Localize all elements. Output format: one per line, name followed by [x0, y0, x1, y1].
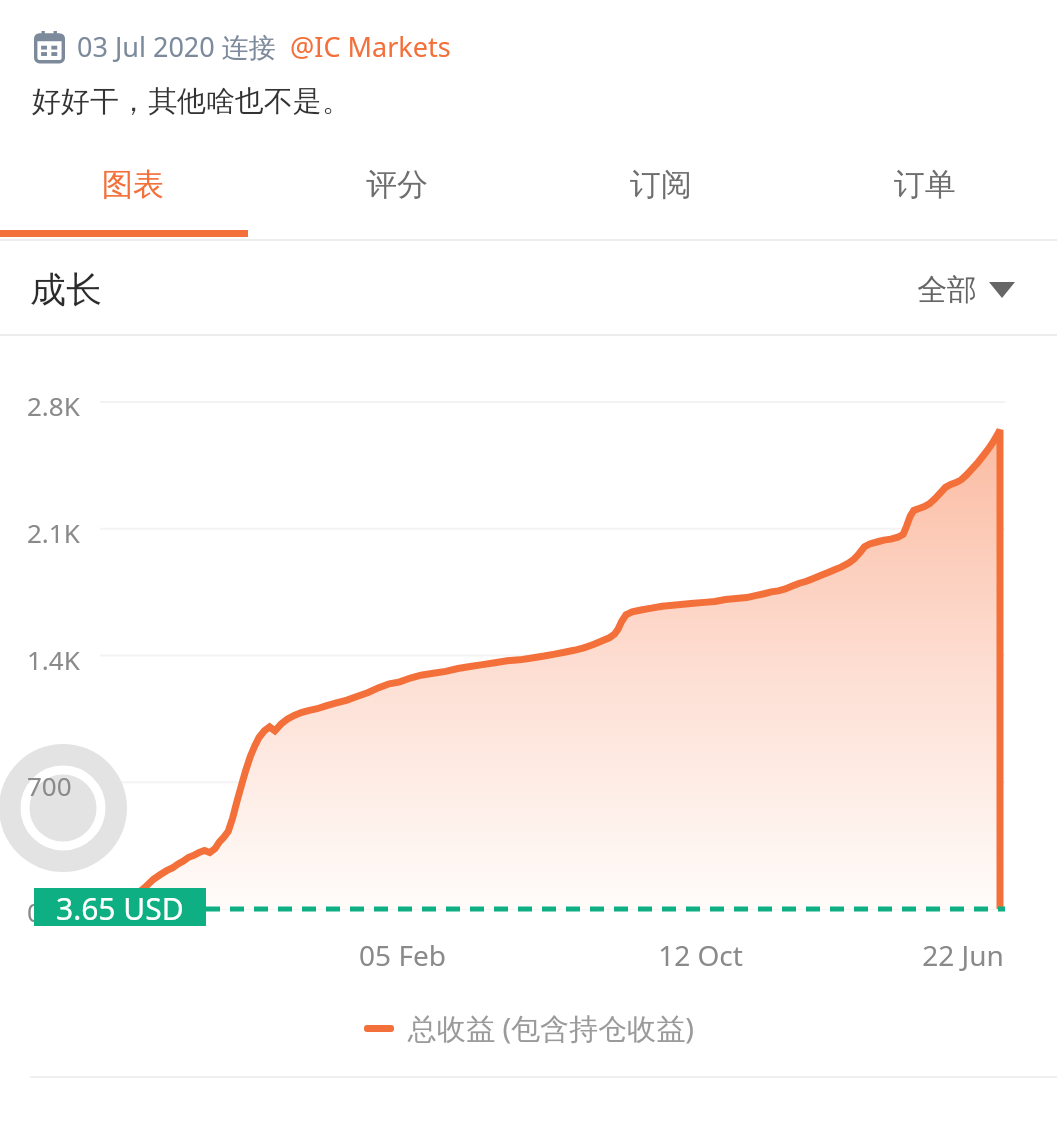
- staticText: 22 Jun: [922, 936, 1004, 974]
- staticText: 05 Feb: [359, 936, 446, 974]
- staticText: 成长: [30, 267, 102, 312]
- staticText: 总收益 (包含持仓收益): [408, 1008, 694, 1048]
- staticText: 03 Jul 2020 连接: [77, 28, 276, 65]
- staticText: 0: [27, 894, 42, 929]
- staticText: 700: [27, 768, 72, 803]
- button[interactable]: 图表: [0, 156, 265, 212]
- staticText: 3.65 USD: [56, 888, 184, 926]
- staticText: 评分: [366, 165, 428, 204]
- staticText: 订阅: [630, 165, 692, 204]
- staticText: @IC Markets: [290, 28, 451, 65]
- button[interactable]: 订单: [793, 156, 1057, 212]
- staticText: 12 Oct: [658, 936, 743, 974]
- staticText: 订单: [894, 165, 956, 204]
- staticText: 1.4K: [27, 642, 80, 677]
- other: Calendar: [34, 31, 65, 63]
- staticText: 好好干，其他啥也不是。: [32, 83, 351, 120]
- button[interactable]: 订阅: [529, 156, 793, 212]
- button[interactable]: 3.65 USD: [34, 888, 206, 926]
- staticText: 2.1K: [27, 515, 80, 550]
- button[interactable]: 总收益 (包含持仓收益): [0, 1008, 1057, 1048]
- button[interactable]: 评分: [265, 156, 529, 212]
- button[interactable]: 全部: [917, 271, 1015, 309]
- button[interactable]: @IC Markets: [290, 28, 451, 65]
- staticText: 图表: [102, 165, 164, 204]
- staticText: 2.8K: [27, 388, 80, 423]
- staticText: 全部: [917, 271, 977, 309]
